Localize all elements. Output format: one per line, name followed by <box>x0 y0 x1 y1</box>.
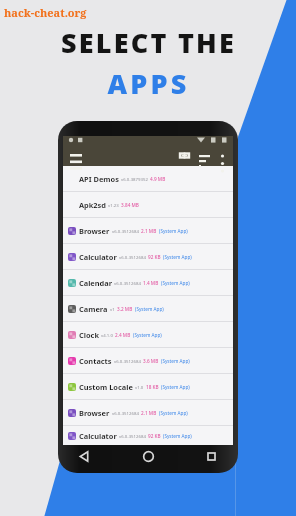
staticText: Clock <box>79 330 99 340</box>
staticText: Calendar <box>79 278 112 288</box>
staticText: v6.0-3512684 <box>119 433 146 439</box>
staticText: 18 KB <box>146 384 159 390</box>
staticText: v1 <box>110 306 115 312</box>
button[interactable]: Custom Locale <box>63 374 233 399</box>
button[interactable]: Home <box>142 450 155 463</box>
staticText: 2.4 MB <box>115 332 131 338</box>
staticText: APPS <box>107 65 190 102</box>
staticText: v1.0 <box>135 384 144 390</box>
staticText: 2.1 MB <box>141 410 157 416</box>
staticText: Browser <box>79 226 110 236</box>
button[interactable]: Menu <box>69 148 83 162</box>
button[interactable]: More options <box>217 150 228 161</box>
button[interactable]: Clock <box>63 322 233 347</box>
staticText: 92 KB <box>148 254 161 260</box>
staticText: (System App) <box>161 358 190 364</box>
button[interactable]: Camera <box>63 296 233 321</box>
staticText: Camera <box>79 304 108 314</box>
staticText: (System App) <box>163 254 192 260</box>
staticText: 3.84 MB <box>121 202 139 208</box>
staticText: SELECT THE <box>61 24 236 61</box>
staticText: 1.4 MB <box>143 280 159 286</box>
staticText: Custom Locale <box>79 382 133 392</box>
staticText: v6.0-3512684 <box>119 254 146 260</box>
staticText: (System App) <box>161 384 190 390</box>
staticText: Apk2sd <box>79 200 106 210</box>
button[interactable]: Recents <box>205 450 218 463</box>
button[interactable]: Add <box>178 149 191 162</box>
button[interactable]: Browser <box>63 400 233 425</box>
staticText: v6.0-3879352 <box>121 176 148 182</box>
staticText: 92 KB <box>148 433 161 439</box>
staticText: hack-cheat.org <box>4 5 87 20</box>
staticText: v4.1.0 <box>101 332 113 338</box>
staticText: Calculator <box>79 252 117 262</box>
staticText: Browser <box>79 408 110 418</box>
staticText: (System App) <box>133 332 162 338</box>
staticText: Calculator <box>79 431 117 441</box>
staticText: 3.6 MB <box>143 358 159 364</box>
staticText: (System App) <box>159 410 188 416</box>
staticText: (System App) <box>163 433 192 439</box>
button[interactable]: Calendar <box>63 270 233 295</box>
button[interactable]: Apk2sd <box>63 192 233 217</box>
staticText: (System App) <box>135 306 164 312</box>
staticText: v6.0-3512684 <box>114 280 141 286</box>
button[interactable]: Contacts <box>63 348 233 373</box>
staticText: (System App) <box>161 280 190 286</box>
staticText: v6.0-3512684 <box>112 228 139 234</box>
staticText: (System App) <box>159 228 188 234</box>
staticText: v6.0-3512684 <box>112 410 139 416</box>
staticText: 4.9 MB <box>150 176 166 182</box>
staticText: v6.0-3512684 <box>114 358 141 364</box>
button[interactable]: Browser <box>63 218 233 243</box>
staticText: API Demos <box>79 174 119 184</box>
button[interactable]: Calculator <box>63 426 233 445</box>
button[interactable]: Sort <box>198 149 211 162</box>
staticText: 2.1 MB <box>141 228 157 234</box>
staticText: v1.23 <box>108 202 119 208</box>
staticText: Contacts <box>79 356 112 366</box>
button[interactable]: Back <box>78 450 91 463</box>
button[interactable]: Calculator <box>63 244 233 269</box>
staticText: 3.2 MB <box>117 306 133 312</box>
button[interactable]: API Demos <box>63 166 233 191</box>
